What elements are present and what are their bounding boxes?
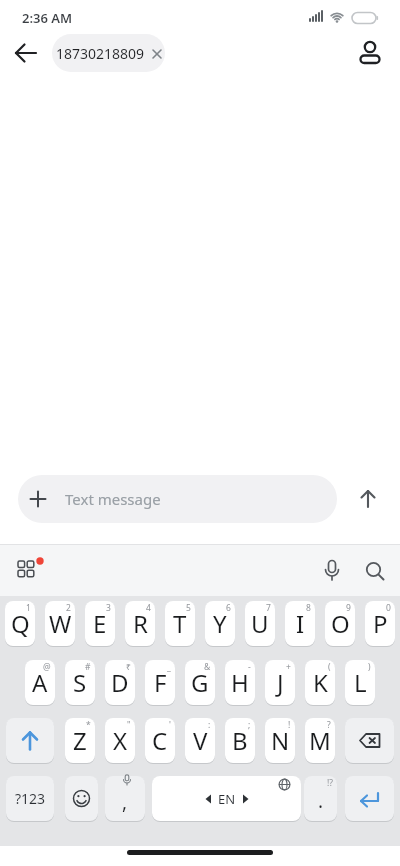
staticText: !? (327, 777, 333, 789)
button[interactable]: J (265, 660, 295, 705)
staticText: 1 (26, 602, 31, 614)
button[interactable] (356, 39, 384, 67)
staticText: P (373, 607, 388, 640)
staticText: 5 (186, 602, 191, 614)
staticText: & (204, 661, 211, 673)
staticText: Y (213, 607, 227, 640)
button[interactable]: W (45, 601, 75, 646)
button[interactable]: Y (205, 601, 235, 646)
staticText: ! (288, 719, 291, 731)
staticText: EN (218, 790, 236, 808)
button[interactable]: F (145, 660, 175, 705)
staticText: O (331, 607, 350, 640)
staticText: G (191, 666, 209, 699)
staticText: Text message (65, 489, 161, 509)
button[interactable]: . (304, 776, 337, 821)
staticText: E (93, 607, 107, 640)
button[interactable] (12, 39, 40, 67)
staticText: 4 (146, 602, 151, 614)
button[interactable]: O (325, 601, 355, 646)
staticText: ?123 (15, 789, 46, 808)
button[interactable]: C (145, 718, 175, 763)
button[interactable]: Text message (18, 475, 337, 523)
staticText: U (251, 607, 269, 640)
staticText: A (32, 666, 48, 699)
button[interactable]: P (365, 601, 395, 646)
staticText: Q (11, 607, 30, 640)
button[interactable]: ?123 (6, 776, 54, 821)
button[interactable]: K (305, 660, 335, 705)
button[interactable] (6, 718, 54, 763)
button[interactable]: E (85, 601, 115, 646)
staticText: 8 (306, 602, 311, 614)
button[interactable] (355, 486, 381, 512)
button[interactable]: H (225, 660, 255, 705)
button[interactable]: , (105, 776, 145, 821)
staticText: * (86, 719, 91, 731)
staticText: X (113, 724, 128, 757)
button[interactable]: X (105, 718, 135, 763)
staticText: L (354, 666, 367, 699)
staticText: D (111, 666, 129, 699)
button[interactable] (65, 776, 98, 821)
staticText: S (73, 666, 87, 699)
button[interactable] (318, 556, 346, 586)
staticText: , (122, 789, 128, 815)
staticText: 6 (226, 602, 231, 614)
button[interactable] (345, 718, 394, 763)
staticText: J (277, 666, 284, 699)
button[interactable] (360, 556, 390, 586)
button[interactable]: B (225, 718, 255, 763)
staticText: K (313, 666, 328, 699)
button[interactable]: I (285, 601, 315, 646)
button[interactable]: G (185, 660, 215, 705)
button[interactable]: L (345, 660, 375, 705)
staticText: Z (73, 724, 87, 757)
staticText: I (296, 607, 305, 640)
staticText: W (49, 607, 72, 640)
staticText: ( (328, 661, 331, 673)
staticText: B (232, 724, 248, 757)
staticText: ₹ (126, 661, 131, 673)
staticText: ) (368, 661, 371, 673)
staticText: T (173, 607, 187, 640)
staticText: @ (43, 661, 51, 673)
button[interactable] (345, 776, 394, 821)
staticText: + (286, 661, 291, 673)
button[interactable]: Z (65, 718, 95, 763)
button[interactable]: EN (152, 776, 301, 821)
button[interactable]: U (245, 601, 275, 646)
button[interactable]: S (65, 660, 95, 705)
staticText: : (208, 719, 211, 731)
staticText: ' (169, 719, 171, 731)
staticText: F (154, 666, 167, 699)
staticText: 7 (266, 602, 271, 614)
staticText: - (248, 661, 251, 673)
staticText: 9 (346, 602, 351, 614)
staticText: 18730218809 (56, 44, 145, 63)
button[interactable] (10, 558, 46, 584)
button[interactable]: A (25, 660, 55, 705)
staticText: C (152, 724, 168, 757)
staticText: R (133, 607, 148, 640)
staticText: 2:36 AM (22, 9, 73, 27)
staticText: 2 (66, 602, 71, 614)
button[interactable]: Q (5, 601, 35, 646)
button[interactable]: R (125, 601, 155, 646)
button[interactable]: T (165, 601, 195, 646)
staticText: " (127, 719, 131, 731)
staticText: _ (167, 661, 171, 673)
button[interactable]: 18730218809 (52, 34, 165, 72)
button[interactable]: N (265, 718, 295, 763)
staticText: . (318, 788, 324, 814)
staticText: 3 (106, 602, 111, 614)
staticText: ; (248, 719, 251, 731)
button[interactable]: V (185, 718, 215, 763)
staticText: H (231, 666, 249, 699)
staticText: M (309, 724, 331, 757)
button[interactable]: D (105, 660, 135, 705)
staticText: ? (327, 719, 331, 731)
staticText: N (271, 724, 290, 757)
button[interactable]: M (305, 718, 335, 763)
staticText: V (193, 724, 208, 757)
